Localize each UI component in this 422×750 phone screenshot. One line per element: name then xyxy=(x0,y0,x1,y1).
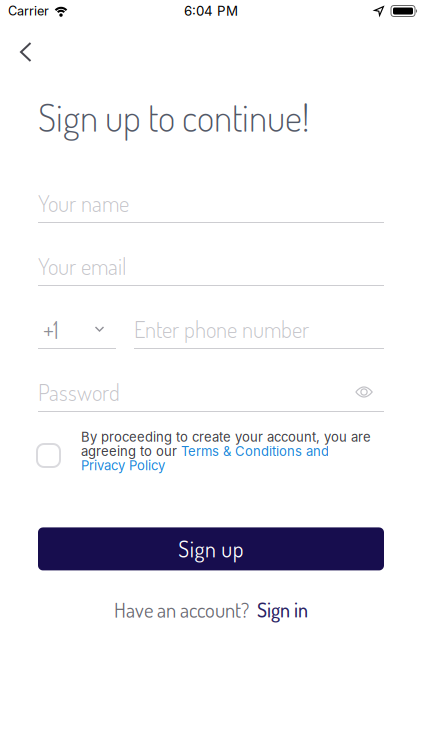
staticText: agreeing to our xyxy=(81,443,181,459)
staticText: Sign up to continue! xyxy=(38,93,309,141)
staticText: 6:04 PM xyxy=(184,3,238,19)
button[interactable]: Sign up xyxy=(38,527,384,570)
staticText: +1 xyxy=(43,313,59,345)
staticText: By proceeding to create your account, yo… xyxy=(81,429,371,445)
staticText: Enter phone number xyxy=(134,315,309,343)
staticText: Sign in xyxy=(257,597,308,622)
button[interactable]: Terms & Conditions and xyxy=(181,443,329,459)
staticText: Your email xyxy=(38,252,126,280)
button[interactable]: Sign in xyxy=(257,597,308,622)
staticText: Your name xyxy=(38,189,129,217)
staticText: Privacy Policy xyxy=(81,458,165,473)
button[interactable]: Privacy Policy xyxy=(81,458,165,473)
staticText: Terms & Conditions and xyxy=(181,443,329,459)
button[interactable]: Show password xyxy=(355,386,384,397)
staticText: Have an account? xyxy=(114,596,249,622)
staticText: Password xyxy=(38,378,120,406)
button[interactable]: Select country code xyxy=(38,318,116,349)
staticText: Carrier xyxy=(8,3,49,19)
button[interactable]: Agree to terms xyxy=(37,444,60,467)
button[interactable]: Back xyxy=(0,42,44,62)
staticText: Sign up xyxy=(178,535,244,563)
